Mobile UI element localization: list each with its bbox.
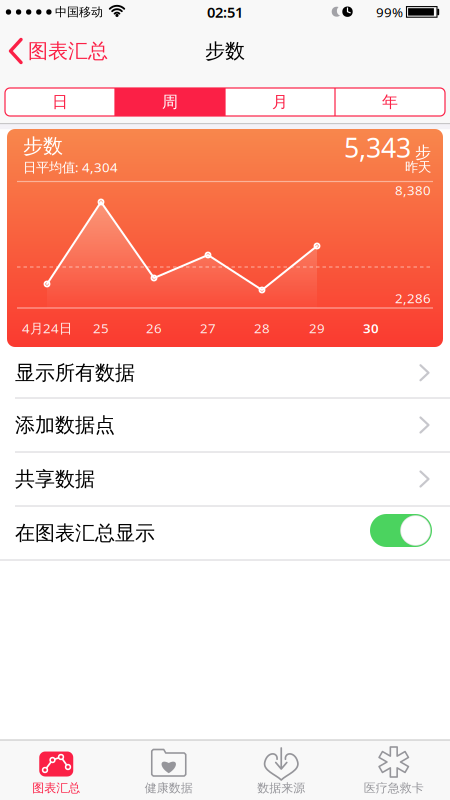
button[interactable]: 月: [225, 88, 335, 116]
staticText: 日平均值: 4,304: [23, 158, 118, 176]
staticText: 周: [162, 92, 178, 112]
staticText: 共享数据: [15, 467, 95, 491]
button[interactable]: 周: [115, 88, 225, 116]
staticText: 年: [382, 92, 398, 112]
button[interactable]: 添加数据点: [0, 398, 450, 452]
staticText: 25: [93, 319, 109, 337]
button[interactable]: 数据来源: [225, 740, 337, 800]
staticText: 02:51: [207, 2, 243, 22]
button[interactable]: 共享数据: [0, 452, 450, 506]
staticText: 数据来源: [257, 781, 305, 795]
staticText: 在图表汇总显示: [15, 521, 155, 545]
staticText: 30: [363, 319, 379, 337]
staticText: 2,286: [395, 289, 431, 307]
staticText: 添加数据点: [15, 413, 115, 437]
button[interactable]: 图表汇总: [0, 740, 112, 800]
staticText: 5,343: [344, 130, 411, 165]
staticText: 8,380: [395, 181, 431, 199]
staticText: 图表汇总: [28, 39, 108, 63]
staticText: 28: [254, 319, 270, 337]
staticText: 步数: [205, 39, 245, 63]
staticText: 月: [272, 92, 288, 112]
staticText: 图表汇总: [32, 781, 80, 795]
staticText: 医疗急救卡: [364, 781, 424, 795]
button[interactable]: 显示所有数据: [0, 347, 450, 398]
staticText: 昨天: [405, 159, 431, 175]
staticText: 4月24日: [22, 319, 72, 337]
staticText: 26: [146, 319, 162, 337]
staticText: 健康数据: [145, 781, 193, 795]
staticText: 99%: [376, 3, 403, 21]
staticText: 中国移动: [55, 5, 103, 19]
button[interactable]: 健康数据: [112, 740, 225, 800]
button[interactable]: 返回图表汇总: [9, 30, 139, 72]
staticText: 步数: [23, 134, 63, 158]
staticText: 显示所有数据: [15, 360, 135, 385]
button[interactable]: 年: [335, 88, 445, 116]
staticText: 日: [52, 92, 68, 112]
button[interactable]: 在图表汇总显示: [370, 514, 432, 547]
staticText: 27: [200, 319, 216, 337]
button[interactable]: 日: [5, 88, 115, 116]
staticText: 步: [415, 143, 431, 162]
button[interactable]: 医疗急救卡: [337, 740, 450, 800]
staticText: 29: [309, 319, 325, 337]
